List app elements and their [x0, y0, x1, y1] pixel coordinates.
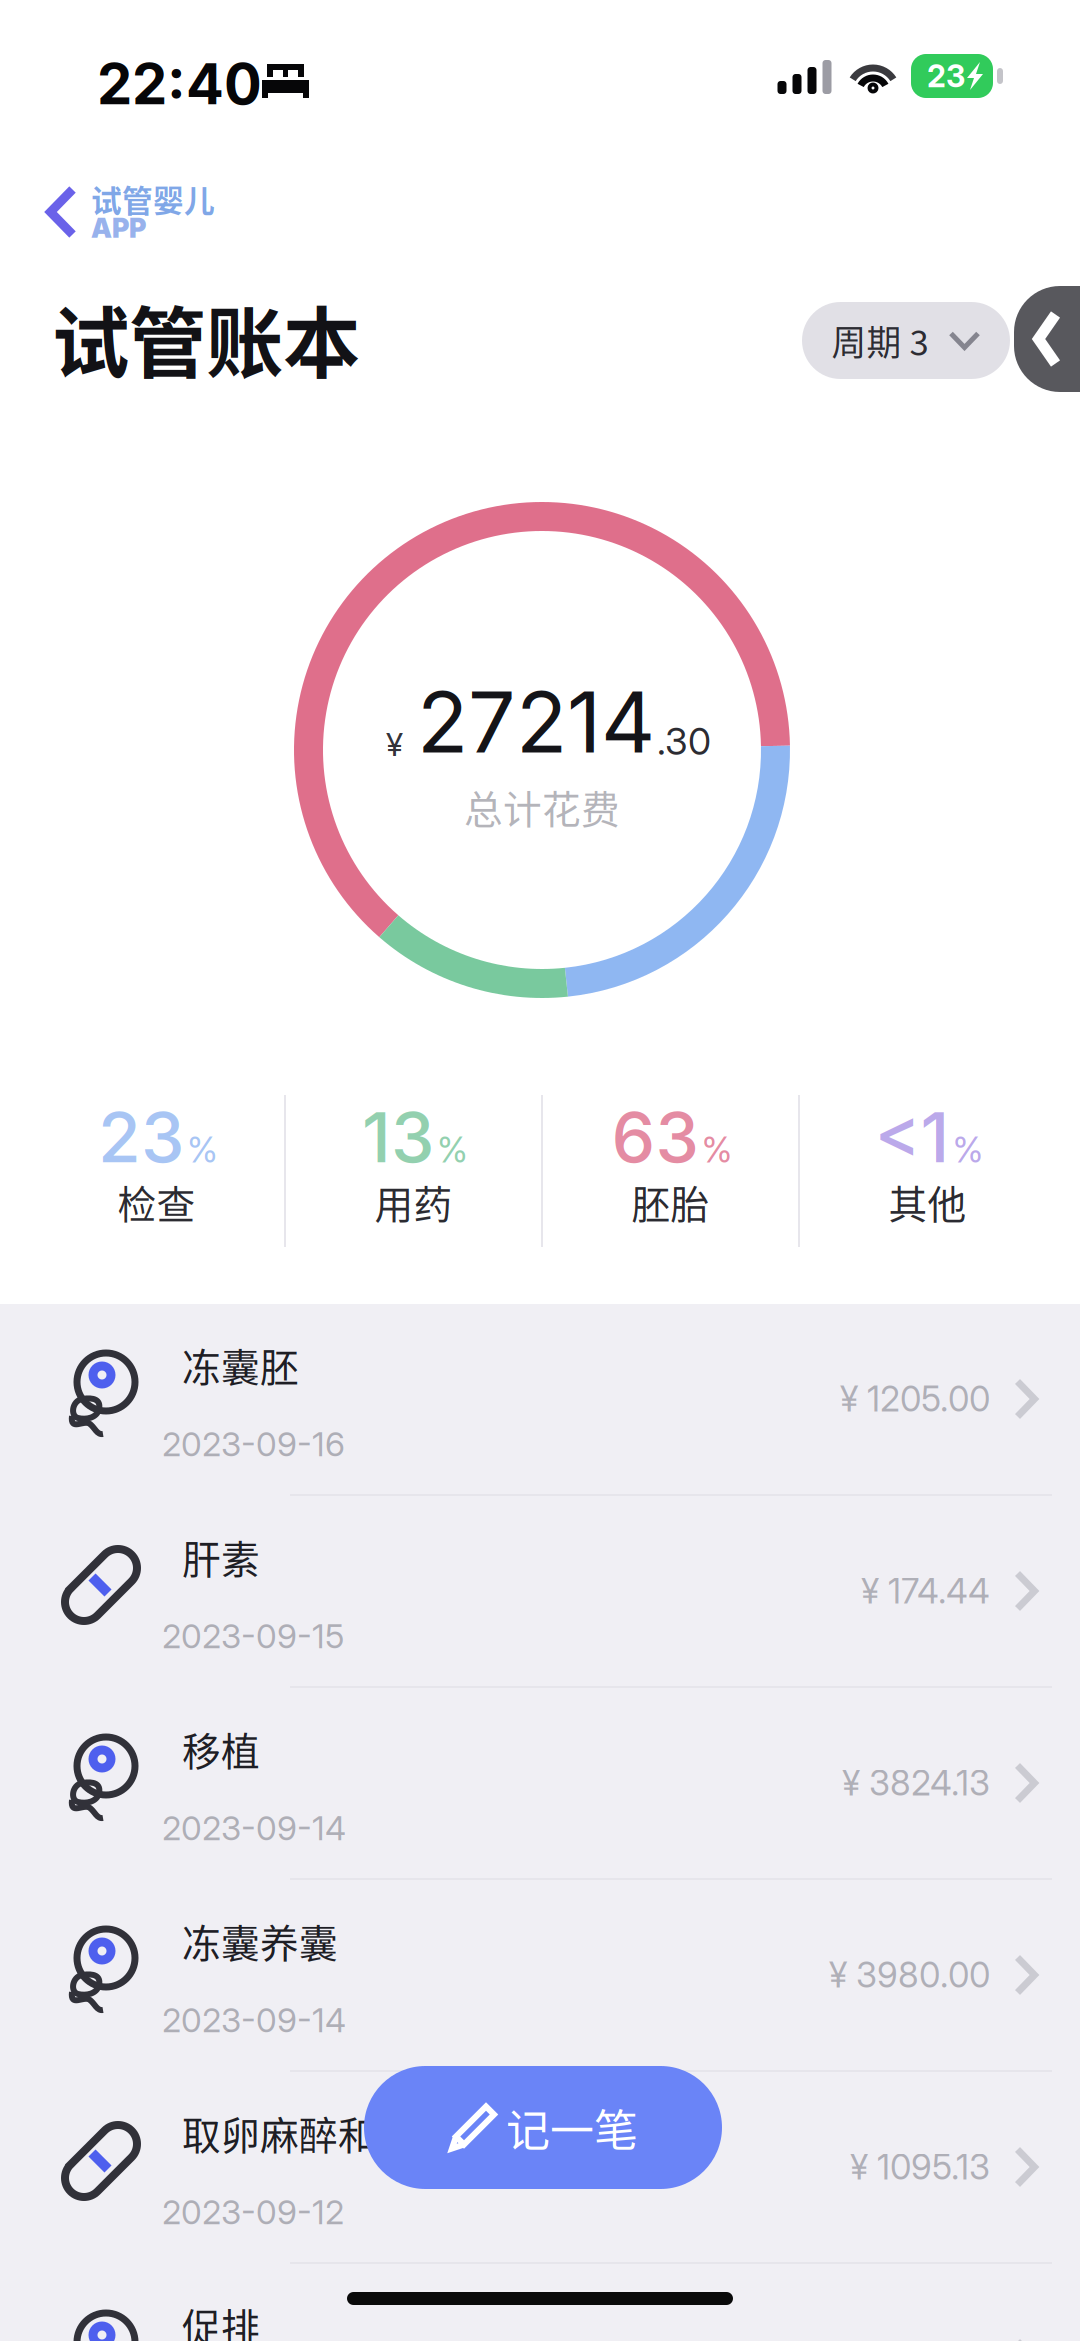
staticText: 检查 — [117, 1174, 195, 1230]
button[interactable]: 冻囊养囊 — [0, 1880, 1080, 2070]
staticText: 27214 — [417, 671, 655, 773]
staticText: % — [701, 1129, 732, 1171]
staticText: 移植 — [182, 1721, 260, 1777]
staticText: 冻囊胚 — [182, 1337, 299, 1393]
staticText: ¥ — [386, 725, 403, 764]
staticText: 2023-09-15 — [162, 1616, 344, 1656]
staticText: 23 — [98, 1095, 184, 1179]
staticText: 2023-09-14 — [162, 2000, 346, 2040]
staticText: % — [437, 1129, 468, 1171]
staticText: 23 — [927, 57, 965, 94]
staticText: 63 — [611, 1095, 698, 1179]
staticText: 试管婴儿 — [91, 177, 215, 221]
button[interactable]: 促排 — [0, 2264, 1080, 2341]
button[interactable]: 取卵麻醉和 — [0, 2072, 1080, 2262]
staticText: ¥ 174.44 — [861, 1570, 990, 1612]
staticText: 2023-09-12 — [162, 2192, 344, 2232]
staticText: 试管账本 — [52, 282, 360, 394]
staticText: .30 — [657, 718, 711, 764]
staticText: ¥ 3980.00 — [829, 1954, 990, 1996]
staticText: 取卵麻醉和 — [182, 2105, 377, 2161]
staticText: ¥ 1205.00 — [840, 1378, 990, 1420]
staticText: 22:40 — [97, 50, 262, 118]
staticText: <1 — [874, 1095, 949, 1179]
button[interactable]: 周期 3 — [802, 302, 1010, 379]
staticText: 肝素 — [182, 1529, 260, 1585]
button[interactable]: 肝素 — [0, 1496, 1080, 1686]
staticText: 胚胎 — [631, 1174, 709, 1230]
staticText: APP — [91, 212, 146, 244]
staticText: ¥ 1095.13 — [850, 2146, 990, 2188]
staticText: 冻囊养囊 — [182, 1913, 338, 1969]
staticText: 用药 — [374, 1174, 452, 1230]
button[interactable]: 移植 — [0, 1688, 1080, 1878]
staticText: 其他 — [888, 1174, 966, 1230]
button[interactable]: Back — [46, 178, 306, 246]
staticText: 周期 3 — [831, 315, 928, 366]
staticText: 记一笔 — [506, 2096, 638, 2159]
staticText: % — [952, 1129, 983, 1171]
button[interactable]: 记一笔 — [364, 2066, 722, 2189]
staticText: 2023-09-16 — [162, 1424, 345, 1464]
staticText: ¥ 3824.13 — [842, 1762, 990, 1804]
staticText: 13 — [362, 1095, 434, 1179]
staticText: % — [187, 1129, 218, 1171]
button[interactable]: 冻囊胚 — [0, 1304, 1080, 1494]
staticText: 促排 — [182, 2297, 260, 2341]
button[interactable]: Collapse panel — [1014, 286, 1080, 392]
staticText: 2023-09-14 — [162, 1808, 346, 1848]
staticText: 总计花费 — [464, 779, 620, 835]
